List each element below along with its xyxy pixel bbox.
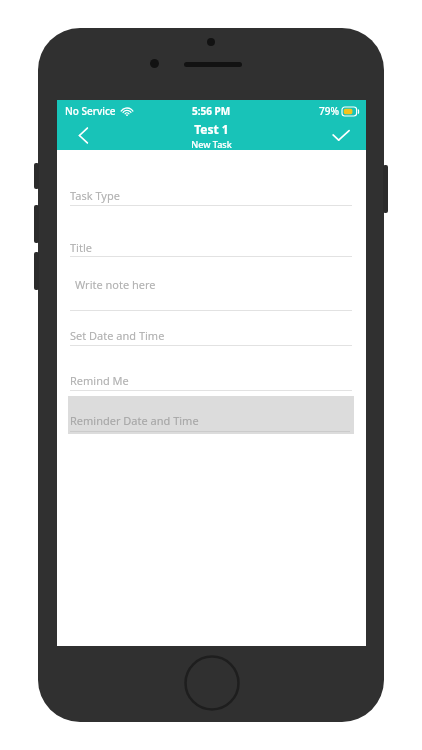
button[interactable]: Title <box>70 240 352 262</box>
staticText: Set Date and Time <box>70 328 165 343</box>
staticText: New Task <box>191 138 232 150</box>
button[interactable]: Set Date and Time <box>70 328 352 351</box>
staticText: Test 1 <box>194 121 229 137</box>
staticText: Write note here <box>75 277 156 292</box>
button[interactable]: Reminder Date and Time <box>68 396 354 434</box>
staticText: Task Type <box>70 188 120 203</box>
button[interactable]: Back <box>65 121 101 150</box>
staticText: Remind Me <box>70 373 129 388</box>
staticText: No Service <box>65 104 116 118</box>
staticText: 79% <box>319 104 339 118</box>
staticText: Title <box>70 240 92 255</box>
staticText: Reminder Date and Time <box>70 413 199 428</box>
button[interactable]: Task Type <box>70 188 352 211</box>
button[interactable]: Remind Me <box>70 373 352 396</box>
button[interactable]: Save <box>322 121 360 150</box>
button[interactable]: Write note here <box>70 277 352 316</box>
staticText: 5:56 PM <box>192 104 231 118</box>
